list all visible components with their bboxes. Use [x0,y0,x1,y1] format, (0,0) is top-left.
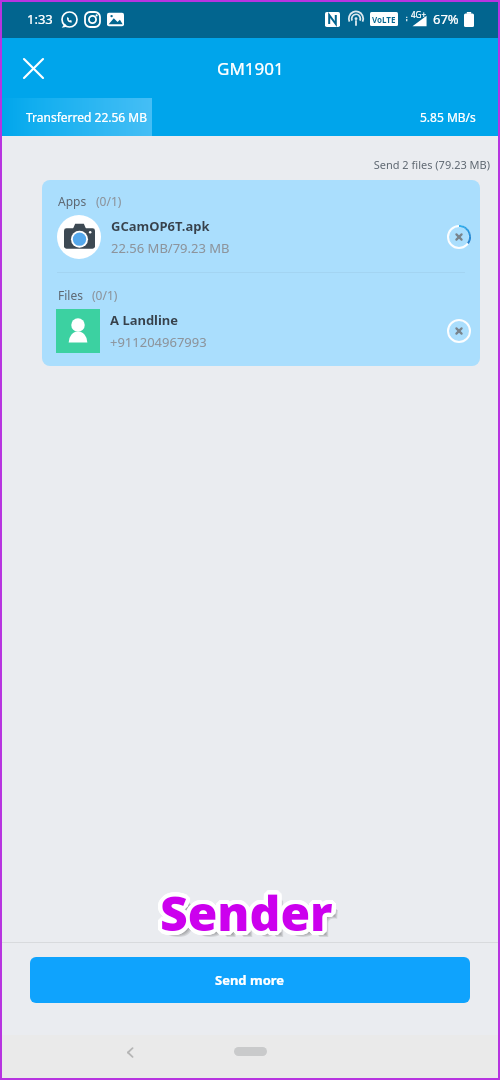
staticText: Sender [161,876,334,941]
staticText: Sender [160,877,333,942]
staticText: Apps [58,193,87,209]
staticText: Sender [161,879,334,944]
staticText: Sender [164,879,337,944]
staticText: VoLTE [372,14,396,25]
staticText: Sender [158,877,331,942]
staticText: Sender [157,880,330,945]
button[interactable]: GCamOP6T.apk [42,214,480,259]
staticText: Sender [159,882,332,947]
staticText: Sender [162,879,335,944]
staticText: Sender [159,883,332,948]
staticText: Sender [156,879,329,944]
staticText: Sender [158,881,331,946]
staticText: Sender [160,881,333,946]
staticText: Sender [160,879,333,944]
staticText: Sender [160,876,333,941]
staticText: Sender [164,880,337,945]
staticText: Sender [159,879,332,944]
staticText: 1:33 [27,10,53,28]
staticText: Sender [156,880,329,945]
button[interactable]: Cancel transfer [444,316,474,346]
staticText: Sender [162,883,335,948]
staticText: Sender [162,878,335,943]
staticText: Sender [158,883,331,948]
staticText: 67% [433,10,459,28]
staticText: Sender [158,880,331,945]
staticText: Sender [159,876,332,941]
staticText: GM1901 [217,57,284,80]
staticText: Sender [163,880,336,945]
staticText: Sender [157,878,330,943]
staticText: Sender [161,878,334,943]
staticText: Sender [159,881,332,946]
staticText: Sender [163,881,336,946]
staticText: Sender [166,886,339,951]
staticText: GCamOP6T.apk [111,217,210,235]
staticText: Sender [161,882,334,947]
staticText: Sender [158,882,331,947]
staticText: Sender [159,880,332,945]
staticText: 5.85 MB/s [420,109,476,125]
staticText: +911204967993 [110,333,207,351]
staticText: Sender [161,877,334,942]
staticText: Send 2 files (79.23 MB) [0,157,490,172]
staticText: Sender [161,881,334,946]
staticText: 22.56 MB/79.23 MB [111,239,230,257]
staticText: Sender [163,879,336,944]
staticText: Sender [162,881,335,946]
staticText: Transferred 22.56 MB [26,109,147,125]
staticText: Sender [158,879,331,944]
staticText: Sender [159,878,332,943]
staticText: Sender [162,877,335,942]
staticText: Sender [157,882,330,947]
staticText: Sender [163,878,336,943]
button[interactable]: Back [118,1040,142,1064]
staticText: Sender [159,884,332,949]
staticText: Sender [157,881,330,946]
staticText: Sender [160,882,333,947]
staticText: Files [58,287,83,303]
staticText: Send more [215,971,285,989]
staticText: Sender [163,882,336,947]
staticText: Sender [165,885,338,950]
staticText: Sender [164,881,337,946]
button[interactable]: Send more [30,957,470,1003]
staticText: (0/1) [92,287,118,303]
staticText: A Landline [110,311,179,329]
staticText: Sender [161,880,334,945]
button[interactable]: Close [17,52,49,84]
button[interactable]: A Landline [42,308,480,353]
staticText: Sender [162,880,335,945]
staticText: Sender [156,881,329,946]
staticText: Sender [163,883,336,948]
staticText: Sender [164,884,337,949]
staticText: Sender [159,877,332,942]
staticText: Sender [160,878,333,943]
staticText: 4G+ [411,9,426,20]
staticText: Sender [158,878,331,943]
staticText: Sender [161,883,334,948]
staticText: Sender [160,880,333,945]
staticText: Sender [157,879,330,944]
staticText: (0/1) [96,193,122,209]
staticText: Sender [160,884,333,949]
staticText: Sender [161,884,334,949]
button[interactable]: Home [234,1047,267,1056]
staticText: Sender [160,883,333,948]
staticText: Sender [162,882,335,947]
button[interactable]: Cancel transfer [444,222,474,252]
